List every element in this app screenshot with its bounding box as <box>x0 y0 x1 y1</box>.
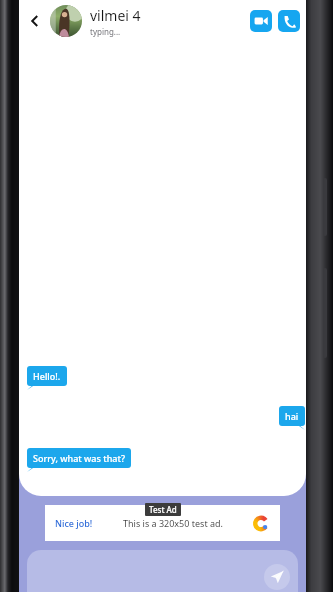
staticText: Test Ad <box>149 504 177 515</box>
button[interactable]: Hello!. <box>27 366 67 390</box>
staticText: hai <box>285 410 299 422</box>
staticText: Hello!. <box>33 370 61 382</box>
staticText: typing... <box>90 26 121 37</box>
button[interactable]: Send <box>264 564 290 590</box>
button[interactable]: hai <box>279 406 305 430</box>
button[interactable]: Send <box>27 550 298 592</box>
staticText: Sorry, what was that? <box>33 452 125 464</box>
button[interactable]: Video call <box>250 10 272 32</box>
button[interactable]: Nice job! <box>45 505 280 541</box>
staticText: vilmei 4 <box>90 6 141 25</box>
staticText: Nice job! <box>55 517 93 529</box>
staticText: This is a 320x50 test ad. <box>123 517 223 529</box>
button[interactable] <box>50 5 82 37</box>
button[interactable]: Sorry, what was that? <box>27 448 131 472</box>
button[interactable]: Call <box>278 10 300 32</box>
button[interactable]: Back <box>23 9 47 33</box>
